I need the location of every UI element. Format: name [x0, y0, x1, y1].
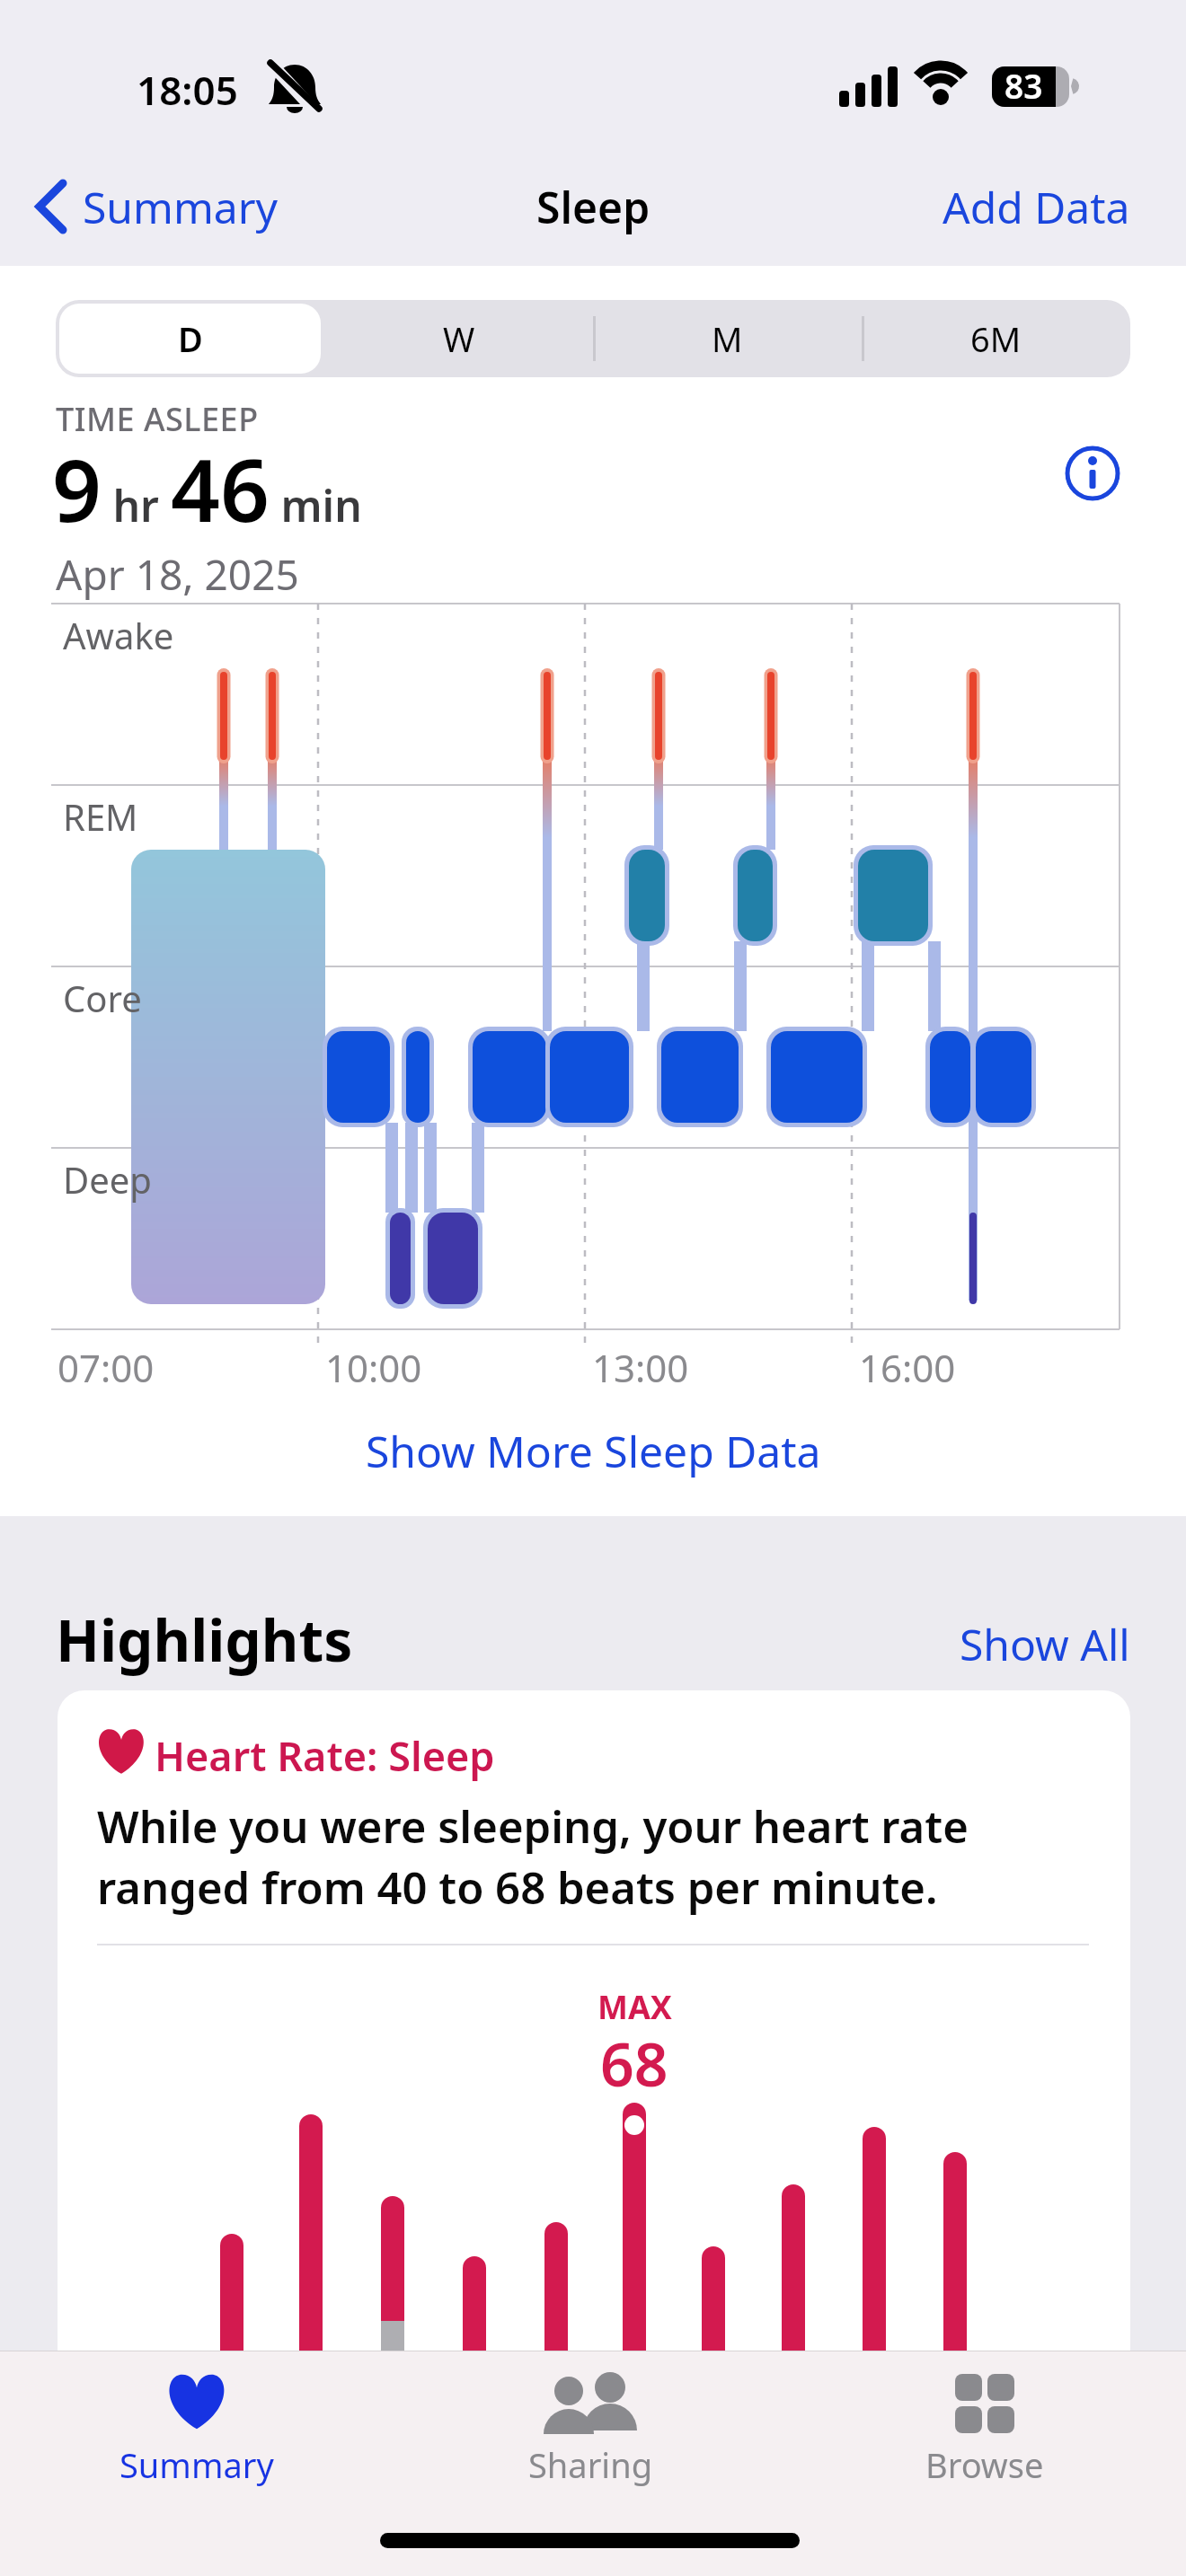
- staticText: 18:05: [137, 63, 238, 117]
- button[interactable]: Show More Sleep Data: [366, 1422, 821, 1480]
- staticText: 46: [171, 429, 270, 547]
- staticText: W: [443, 315, 475, 362]
- button[interactable]: Add Data: [943, 178, 1130, 236]
- staticText: Heart Rate: Sleep: [155, 1728, 495, 1783]
- staticText: Apr 18, 2025: [56, 546, 299, 603]
- staticText: While you were sleeping, your heart rate…: [97, 1796, 969, 1917]
- staticText: hr: [102, 476, 171, 534]
- staticText: TIME ASLEEP: [56, 397, 259, 441]
- button[interactable]: W: [324, 300, 593, 377]
- staticText: Browse: [925, 2441, 1044, 2488]
- staticText: 13:00: [592, 1342, 689, 1393]
- staticText: 6M: [970, 315, 1022, 362]
- staticText: 68: [600, 2023, 668, 2095]
- button[interactable]: Show All: [960, 1615, 1130, 1673]
- staticText: 9: [52, 429, 102, 547]
- staticText: Sharing: [528, 2441, 653, 2488]
- button[interactable]: D: [56, 300, 324, 377]
- button[interactable]: Sharing: [482, 2373, 698, 2508]
- staticText: M: [712, 315, 743, 362]
- staticText: 16:00: [859, 1342, 956, 1393]
- button[interactable]: Browse: [877, 2373, 1093, 2508]
- staticText: Core: [63, 974, 142, 1022]
- button[interactable]: [58, 1690, 1130, 2576]
- staticText: Summary: [119, 2441, 274, 2488]
- staticText: Summary: [83, 178, 279, 236]
- staticText: D: [178, 315, 203, 362]
- staticText: Highlights: [56, 1601, 353, 1679]
- staticText: 83: [1005, 63, 1043, 108]
- staticText: REM: [63, 792, 138, 841]
- button[interactable]: Summary: [89, 2373, 305, 2508]
- staticText: Sleep: [536, 178, 651, 236]
- staticText: 07:00: [58, 1342, 155, 1393]
- staticText: 10:00: [325, 1342, 422, 1393]
- button[interactable]: 6M: [862, 300, 1130, 377]
- staticText: Deep: [63, 1155, 152, 1204]
- button[interactable]: Summary: [27, 171, 279, 243]
- staticText: min: [270, 476, 362, 534]
- button[interactable]: M: [593, 300, 862, 377]
- staticText: MAX: [597, 1985, 672, 2025]
- button[interactable]: [1065, 446, 1120, 501]
- staticText: Awake: [63, 611, 174, 659]
